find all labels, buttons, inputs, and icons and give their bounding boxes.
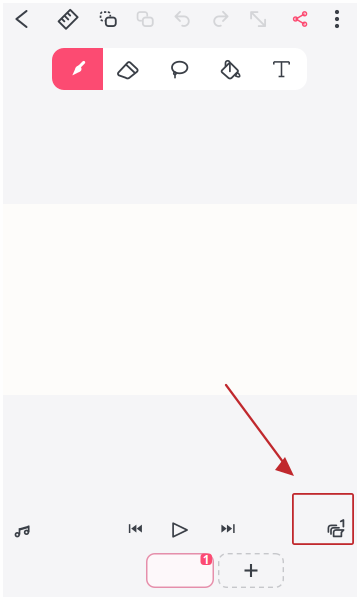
button[interactable]: Add frame [218, 553, 284, 588]
button[interactable]: Eraser [103, 48, 154, 90]
button[interactable]: Undo [166, 0, 200, 38]
button[interactable]: Fill [205, 48, 256, 90]
button[interactable]: Duplicate frame [92, 0, 124, 38]
button[interactable]: Redo [200, 0, 240, 38]
button[interactable]: Text [256, 48, 307, 90]
staticText: 1 [203, 551, 210, 567]
button[interactable]: Previous frame [117, 510, 155, 548]
button[interactable]: More options [324, 0, 350, 38]
button[interactable]: Frame 1 [146, 553, 214, 588]
button[interactable]: Play [161, 511, 199, 549]
button[interactable]: Layers [292, 493, 354, 545]
button[interactable]: Resize canvas [240, 0, 276, 38]
button[interactable]: Paste frame [124, 0, 166, 38]
button[interactable]: Audio [2, 511, 42, 551]
button[interactable]: Brush [52, 48, 103, 90]
button[interactable]: Share [276, 0, 324, 38]
button[interactable]: Lasso [154, 48, 205, 90]
button[interactable]: Back [0, 0, 44, 38]
button[interactable]: Next frame [209, 510, 247, 548]
button[interactable]: Ruler [44, 0, 92, 38]
